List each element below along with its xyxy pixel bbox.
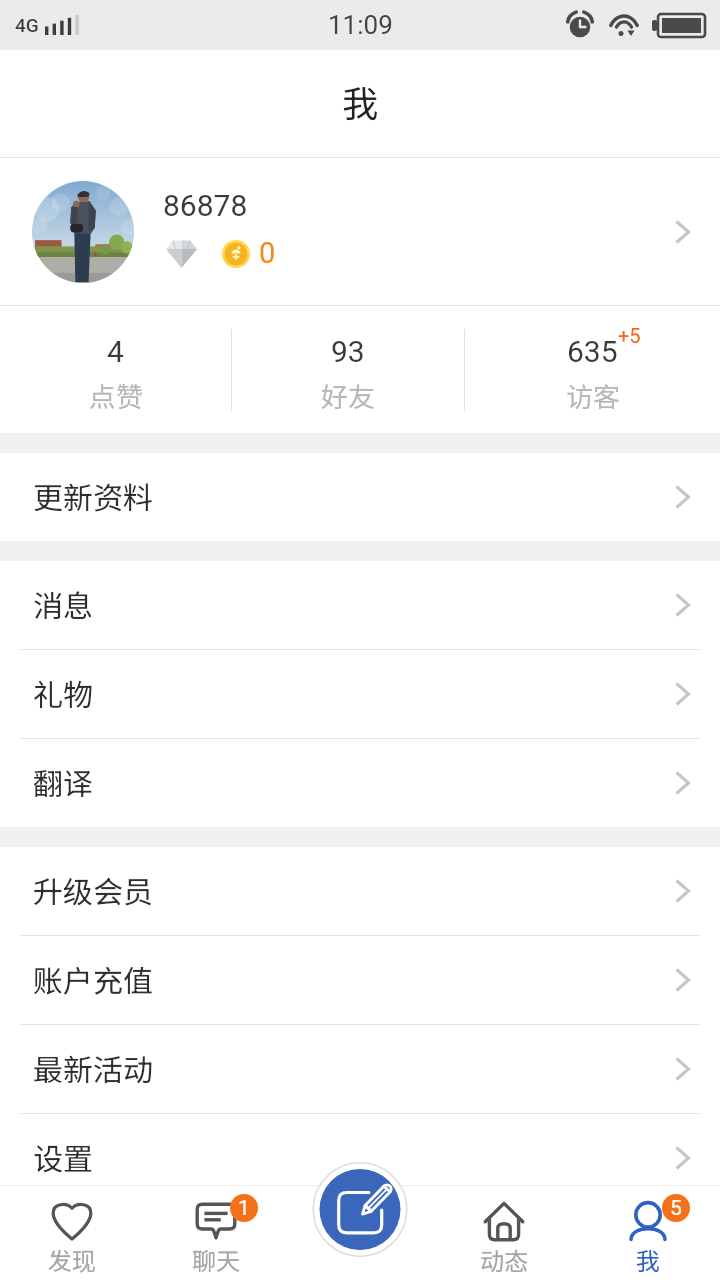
staticText: 点赞: [89, 376, 143, 415]
button[interactable]: 发现: [0, 1185, 144, 1280]
button[interactable]: 93: [232, 306, 464, 433]
button[interactable]: 设置: [0, 1114, 720, 1202]
staticText: 礼物: [33, 671, 93, 714]
staticText: +5: [618, 324, 641, 347]
button[interactable]: 635: [465, 306, 720, 433]
staticText: 1: [238, 1196, 250, 1221]
staticText: 账户充值: [33, 957, 153, 1000]
button[interactable]: 礼物: [0, 650, 720, 738]
staticText: 升级会员: [33, 868, 153, 911]
staticText: 我: [342, 75, 379, 127]
staticText: 我: [636, 1242, 660, 1277]
staticText: 设置: [33, 1135, 93, 1178]
button[interactable]: 消息: [0, 561, 720, 649]
staticText: 93: [331, 334, 365, 369]
staticText: 4: [107, 334, 124, 369]
button[interactable]: 最新活动: [0, 1025, 720, 1113]
staticText: 4G: [15, 14, 39, 36]
staticText: 好友: [321, 376, 375, 415]
staticText: 0: [259, 236, 276, 270]
staticText: 5: [670, 1196, 682, 1221]
staticText: 动态: [480, 1242, 528, 1277]
staticText: 11:09: [328, 10, 393, 40]
button[interactable]: 升级会员: [0, 847, 720, 935]
button[interactable]: 动态: [432, 1185, 576, 1280]
button[interactable]: 5: [576, 1185, 720, 1280]
staticText: 635: [567, 334, 618, 369]
staticText: 发现: [48, 1242, 96, 1277]
button[interactable]: 翻译: [0, 739, 720, 827]
button[interactable]: Compose: [308, 1162, 412, 1257]
staticText: 86878: [163, 188, 248, 223]
staticText: 更新资料: [33, 474, 153, 517]
staticText: 消息: [33, 582, 93, 625]
staticText: 翻译: [33, 760, 93, 803]
button[interactable]: 86878: [0, 158, 720, 305]
button[interactable]: 更新资料: [0, 453, 720, 541]
staticText: 最新活动: [33, 1046, 153, 1089]
button[interactable]: 1: [144, 1185, 288, 1280]
button[interactable]: 4: [0, 306, 231, 433]
staticText: 访客: [566, 376, 620, 415]
staticText: 聊天: [192, 1242, 240, 1277]
button[interactable]: 账户充值: [0, 936, 720, 1024]
